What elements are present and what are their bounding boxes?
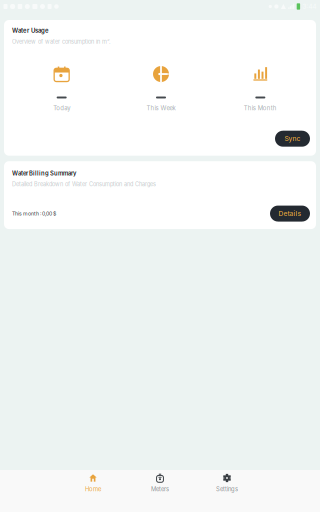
button[interactable]: Meters [126,470,193,512]
staticText: Water Billing Summary [12,170,76,177]
staticText: Today [53,104,70,112]
staticText: Water Usage [12,27,49,34]
staticText: Sync [284,135,300,143]
staticText: Details [278,209,301,218]
staticText: This Month [244,104,277,112]
staticText: This month : 0,00 $ [12,210,56,217]
staticText: Detailed Breakdown of Water Consumption … [12,181,156,188]
button[interactable]: Details [270,206,310,222]
button[interactable]: Sync [275,131,310,147]
staticText: This Week [146,104,175,112]
staticText: Overview of water consumption in m³. [12,38,111,45]
staticText: Home [85,485,101,493]
staticText: Settings [216,485,238,493]
staticText: Meters [151,485,169,493]
button[interactable]: Home [59,470,126,512]
button[interactable]: Settings [193,470,260,512]
